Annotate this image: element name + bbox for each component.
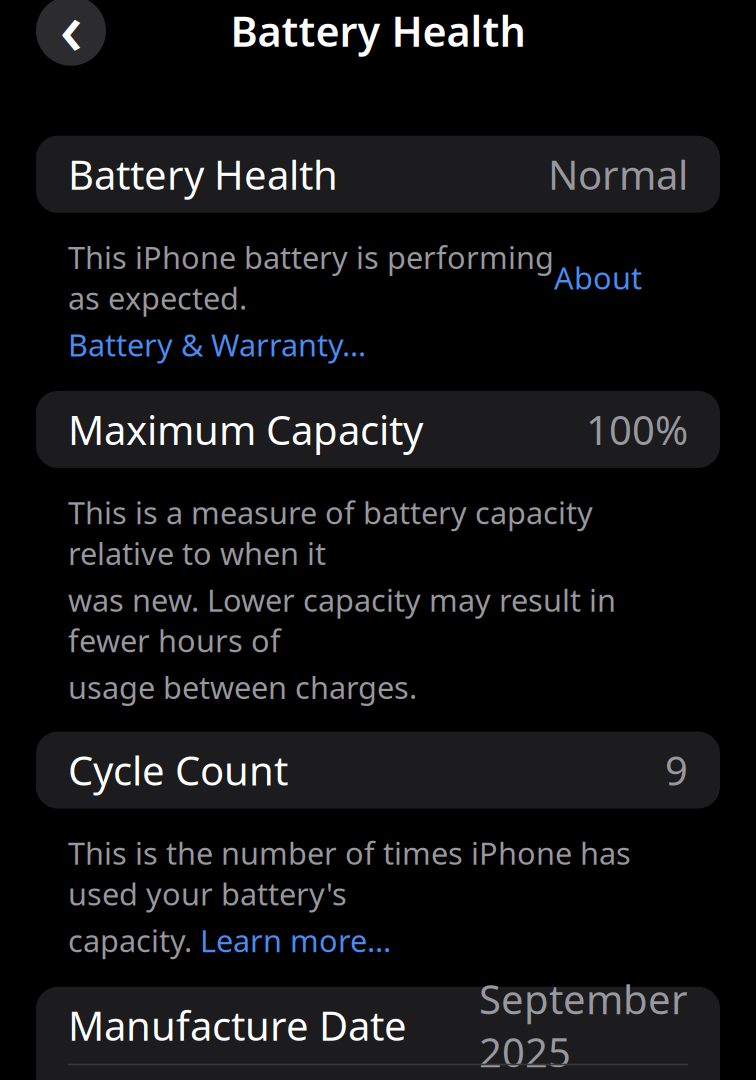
staticText: Battery Health [68, 148, 338, 201]
button[interactable]: First Use [36, 1065, 720, 1080]
staticText: capacity. [68, 920, 200, 961]
staticText: This is a measure of battery capacity re… [68, 492, 593, 573]
staticText: September 2025 [479, 972, 688, 1078]
staticText: was new. Lower capacity may result in fe… [68, 579, 616, 661]
staticText: ‹ [59, 0, 82, 75]
button[interactable]: Back [36, 0, 106, 66]
staticText: This is the number of times iPhone has u… [68, 833, 631, 914]
button[interactable]: Cycle Count [36, 732, 720, 809]
staticText: Battery & Warranty... [68, 324, 366, 365]
button[interactable]: Maximum Capacity [36, 391, 720, 468]
staticText: 100% [586, 403, 688, 456]
staticText: This iPhone battery is performing as exp… [68, 237, 554, 318]
staticText: usage between charges. [68, 667, 417, 707]
staticText: Battery Health [230, 3, 525, 58]
staticText: Normal [548, 148, 688, 201]
staticText: About [554, 257, 642, 298]
staticText: Learn more... [200, 920, 391, 961]
staticText: Maximum Capacity [68, 403, 423, 456]
button[interactable]: This is the number of times iPhone has u… [0, 809, 756, 961]
staticText: Cycle Count [68, 743, 288, 797]
staticText: 9 [665, 743, 688, 797]
button[interactable]: Manufacture Date [36, 987, 720, 1064]
staticText: Manufacture Date [68, 999, 407, 1052]
button[interactable]: Battery Health [36, 136, 720, 213]
button[interactable]: This iPhone battery is performing as exp… [0, 213, 756, 365]
